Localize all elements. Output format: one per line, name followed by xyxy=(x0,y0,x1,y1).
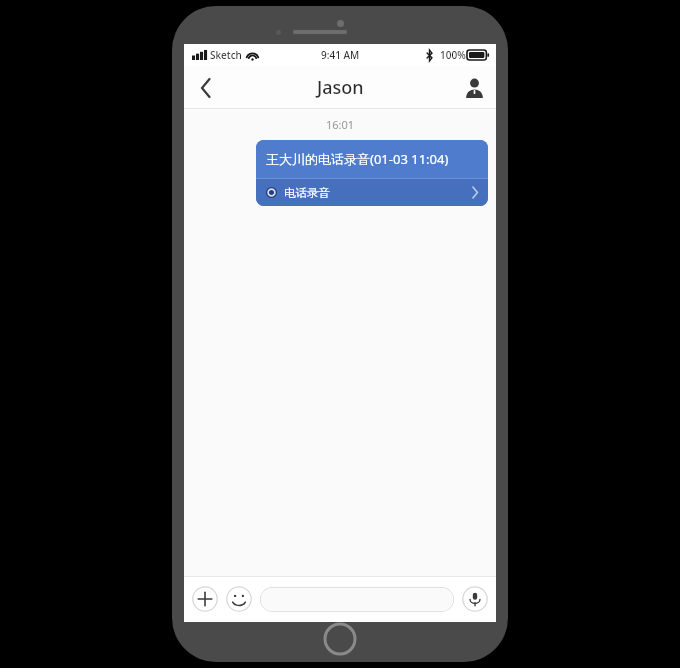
button[interactable]: Back xyxy=(184,66,228,109)
staticText: 100% xyxy=(440,48,466,62)
staticText: 电话录音 xyxy=(284,186,330,200)
button[interactable]: Voice message xyxy=(462,586,488,612)
button[interactable]: Add attachment xyxy=(192,586,218,612)
staticText: Sketch xyxy=(210,48,242,62)
button[interactable]: Emoji xyxy=(226,586,252,612)
staticText: Jason xyxy=(317,75,364,100)
staticText: 王大川的电话录音(01-03 11:04) xyxy=(266,150,449,168)
staticText: 16:01 xyxy=(184,117,496,132)
staticText: 9:41 AM xyxy=(321,48,360,62)
button[interactable]: Contact info xyxy=(452,66,496,109)
button[interactable]: Message input xyxy=(260,587,454,612)
button[interactable]: 王大川的电话录音(01-03 11:04) xyxy=(256,140,488,206)
